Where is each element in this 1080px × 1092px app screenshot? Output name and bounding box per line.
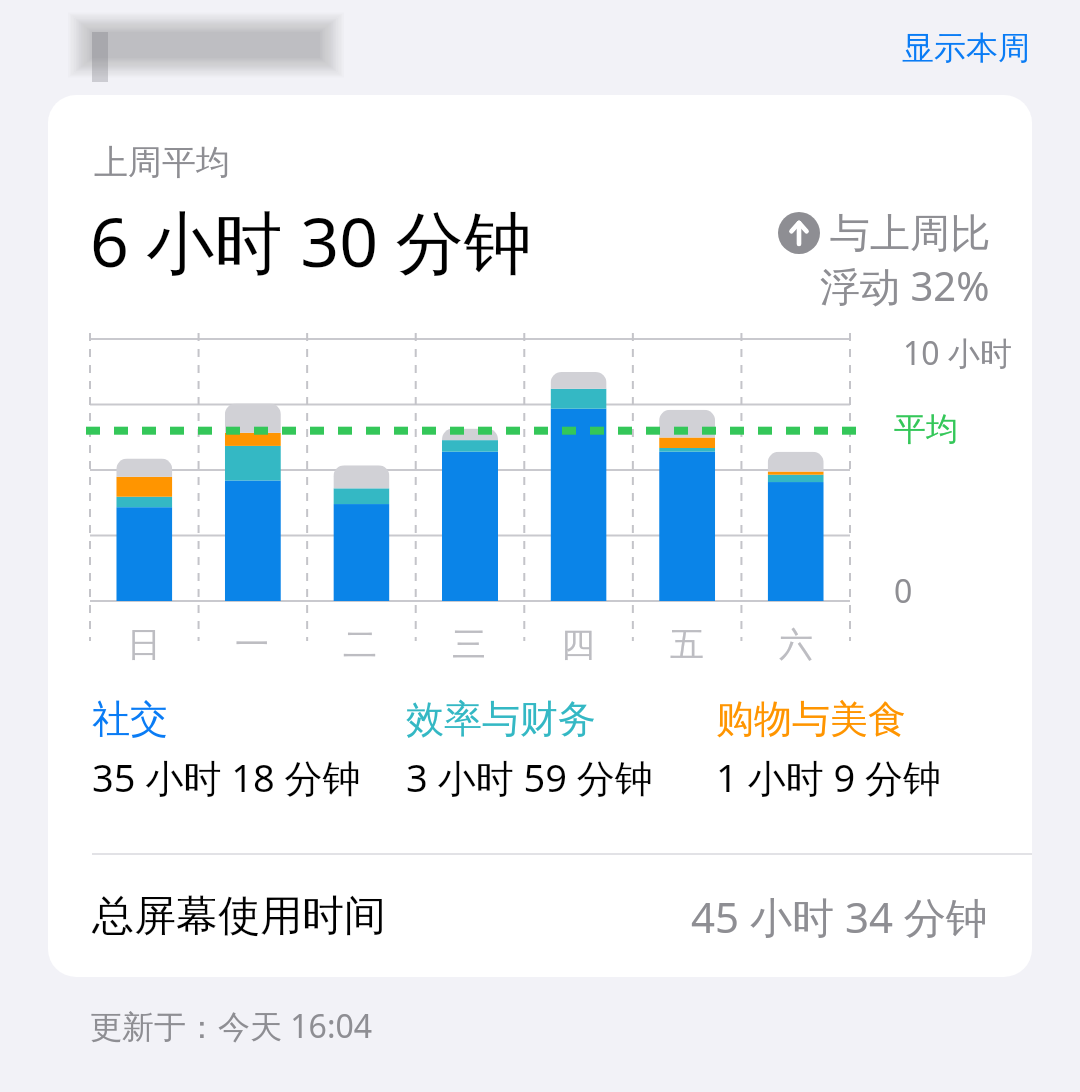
staticText: 六 (779, 623, 813, 666)
staticText: 总屏幕使用时间 (92, 890, 386, 943)
button[interactable]: 购物与美食 (716, 695, 996, 803)
staticText: 日 (127, 623, 161, 666)
staticText: 显示本周 (902, 28, 1030, 68)
other: Increase compared to last week (778, 212, 820, 254)
staticText: 3 小时 59 分钟 (406, 751, 653, 803)
staticText: 上周平均 (94, 141, 230, 184)
button[interactable]: 社交 (92, 695, 406, 803)
staticText: 0 (894, 569, 913, 613)
staticText: 一 (235, 623, 269, 666)
staticText: 购物与美食 (716, 695, 906, 743)
staticText: 平均 (894, 409, 958, 449)
staticText: 1 小时 9 分钟 (716, 751, 942, 803)
staticText: 45 小时 34 分钟 (691, 888, 988, 945)
staticText: 与上周比 (830, 208, 990, 258)
staticText: 35 小时 18 分钟 (92, 751, 361, 803)
staticText: 6 小时 30 分钟 (90, 194, 532, 287)
staticText: 社交 (92, 695, 168, 743)
staticText: 二 (343, 623, 377, 666)
staticText: 10 小时 (903, 331, 1012, 375)
staticText: 更新于：今天 16:04 (90, 1004, 373, 1048)
button[interactable]: 效率与财务 (406, 695, 716, 803)
button[interactable]: 显示本周 (896, 20, 1036, 76)
staticText: 四 (561, 623, 595, 666)
button[interactable]: 总屏幕使用时间 (48, 855, 1032, 977)
staticText: 浮动 32% (820, 258, 990, 313)
staticText: 三 (452, 623, 486, 666)
staticText: 效率与财务 (406, 695, 596, 743)
staticText: 五 (670, 623, 704, 666)
